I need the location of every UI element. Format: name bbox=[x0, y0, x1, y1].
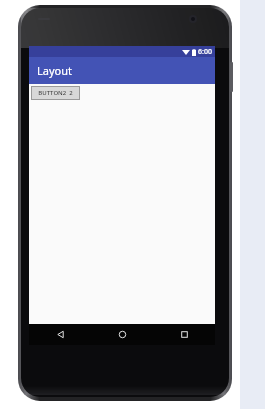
button[interactable]: Home bbox=[91, 324, 153, 345]
button[interactable]: Layout bbox=[29, 57, 215, 84]
button[interactable]: Back bbox=[29, 324, 91, 345]
button[interactable]: BUTTON2 2 bbox=[31, 86, 80, 100]
staticText: BUTTON2 2 bbox=[38, 89, 73, 97]
button[interactable]: Recent apps bbox=[153, 324, 215, 345]
staticText: 6:00 bbox=[198, 47, 212, 57]
staticText: Layout bbox=[37, 63, 72, 78]
other: Power bbox=[230, 62, 233, 92]
